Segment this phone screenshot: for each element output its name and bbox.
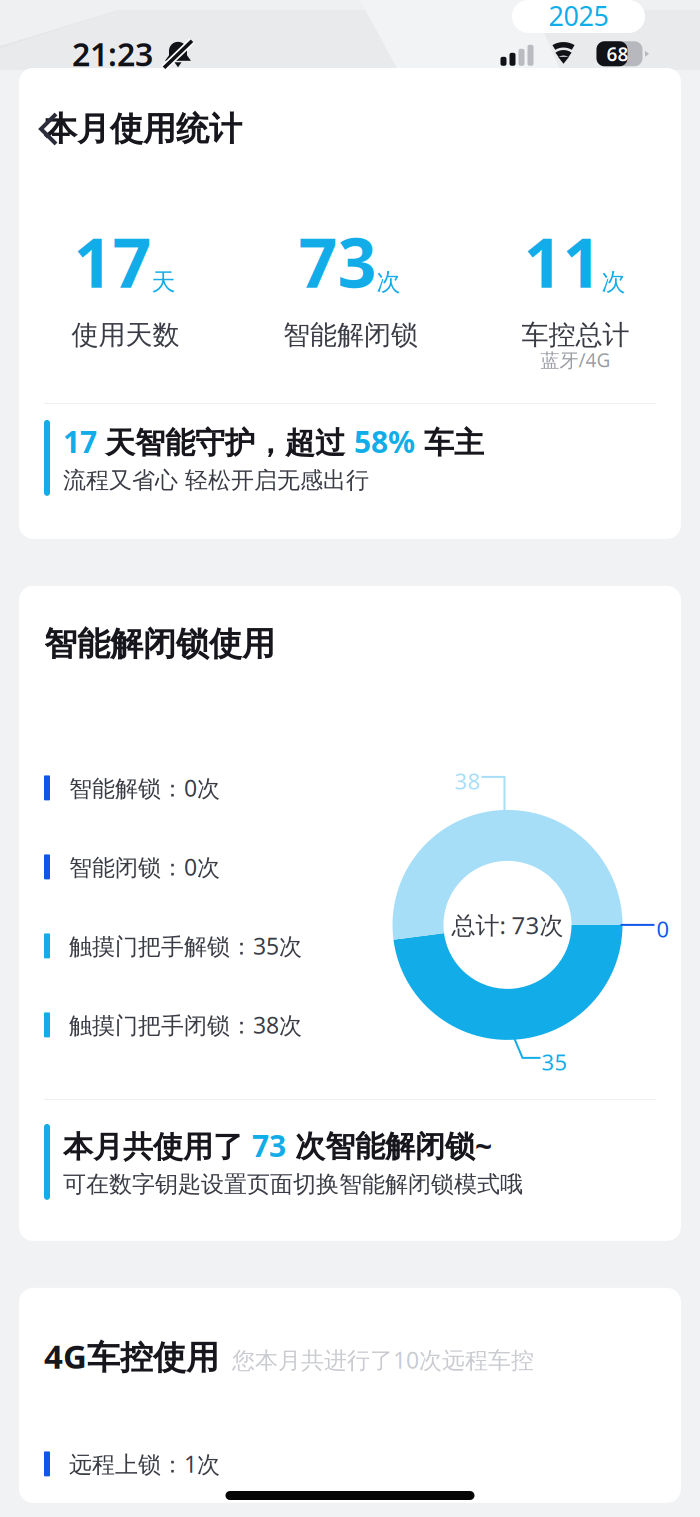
staticText: 38 (454, 766, 480, 796)
staticText: 远程上锁：1次 (69, 1448, 220, 1479)
staticText: 智能解闭锁 (283, 318, 418, 352)
staticText: 0 (656, 914, 669, 944)
staticText: 智能解锁：0次 (69, 772, 220, 803)
staticText: 次智能解闭锁~ (286, 1125, 492, 1166)
staticText: 天 (151, 267, 175, 297)
staticText: 车控总计 (521, 318, 629, 352)
staticText: 您本月共进行了10次远程车控 (232, 1344, 534, 1375)
staticText: 车主 (415, 424, 484, 462)
button[interactable]: Back (44, 111, 60, 147)
staticText: 58% (354, 421, 415, 462)
staticText: 11 (523, 215, 601, 308)
staticText: 触摸门把手闭锁：38次 (69, 1009, 302, 1040)
staticText: 使用天数 (71, 318, 179, 352)
staticText: 本月共使用了 (63, 1128, 252, 1166)
staticText: 2025 (548, 0, 608, 34)
staticText: 天智能守护，超过 (105, 424, 354, 462)
staticText: 次 (376, 267, 400, 297)
staticText: 68 (606, 41, 628, 67)
staticText: 4G车控使用 (44, 1333, 219, 1378)
staticText: 17 (63, 421, 105, 462)
staticText: 流程又省心 轻松开启无感出行 (63, 466, 369, 495)
staticText: 17 (73, 215, 151, 308)
staticText: 35 (541, 1047, 567, 1077)
staticText: 本月使用统计 (44, 108, 242, 150)
staticText: 21:23 (72, 32, 153, 76)
staticText: 智能闭锁：0次 (69, 851, 220, 882)
staticText: 智能解闭锁使用 (44, 623, 275, 665)
staticText: 73 (298, 215, 376, 308)
staticText: 73 (252, 1125, 286, 1166)
staticText: 蓝牙/4G (540, 347, 610, 373)
staticText: 可在数字钥匙设置页面切换智能解闭锁模式哦 (63, 1170, 523, 1199)
staticText: 触摸门把手解锁：35次 (69, 930, 302, 961)
staticText: 次 (601, 267, 625, 297)
staticText: 总计: 73次 (451, 908, 563, 941)
